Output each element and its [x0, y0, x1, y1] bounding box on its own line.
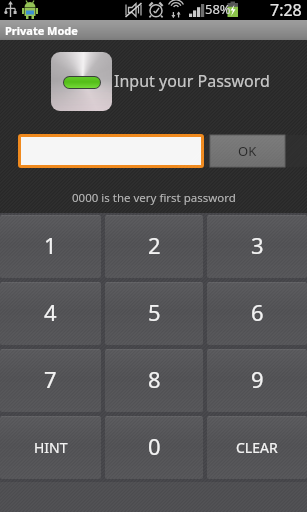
- button[interactable]: 5: [105, 282, 203, 345]
- button[interactable]: 2: [105, 215, 203, 278]
- button[interactable]: HINT: [0, 416, 101, 479]
- staticText: 3: [251, 230, 264, 260]
- button[interactable]: 8: [105, 349, 203, 412]
- staticText: 6: [251, 297, 264, 327]
- staticText: Private Mode: [5, 23, 78, 38]
- staticText: HINT: [34, 438, 68, 457]
- staticText: 7: [44, 364, 57, 394]
- staticText: 9: [251, 364, 264, 394]
- button[interactable]: 7: [0, 349, 101, 412]
- staticText: CLEAR: [236, 438, 278, 457]
- button[interactable]: 4: [0, 282, 101, 345]
- staticText: 5: [148, 297, 161, 327]
- staticText: 4: [44, 297, 57, 327]
- staticText: 0000 is the very first password: [72, 190, 236, 206]
- staticText: OK: [238, 142, 257, 160]
- button[interactable]: 9: [207, 349, 307, 412]
- button[interactable]: 0: [105, 416, 203, 479]
- button[interactable]: 1: [0, 215, 101, 278]
- button[interactable]: Private mode: [51, 52, 112, 111]
- button[interactable]: 3: [207, 215, 307, 278]
- button[interactable]: 6: [207, 282, 307, 345]
- staticText: 58%: [205, 0, 231, 18]
- staticText: 0: [148, 431, 161, 461]
- staticText: Input your Password: [114, 70, 270, 92]
- button[interactable]: CLEAR: [207, 416, 307, 479]
- staticText: 2: [148, 230, 161, 260]
- staticText: 7:28: [270, 0, 302, 19]
- button[interactable]: OK: [210, 135, 285, 167]
- staticText: 8: [148, 364, 161, 394]
- staticText: 1: [44, 230, 57, 260]
